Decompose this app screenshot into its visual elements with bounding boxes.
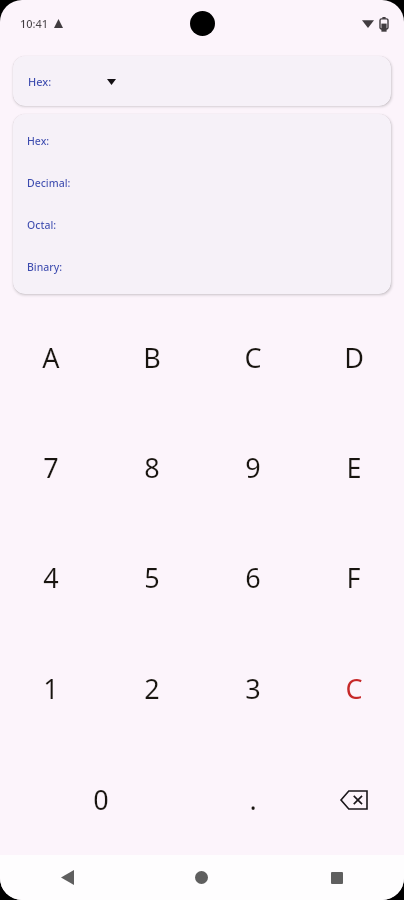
staticText: Hex: bbox=[27, 134, 50, 148]
button[interactable]: 4 bbox=[0, 522, 101, 633]
button[interactable]: Hex: bbox=[13, 56, 391, 106]
button[interactable]: 6 bbox=[202, 522, 303, 633]
button[interactable]: Back bbox=[0, 855, 134, 900]
staticText: Binary: bbox=[27, 260, 63, 274]
staticText: 1 bbox=[43, 670, 59, 707]
staticText: F bbox=[346, 559, 361, 596]
button[interactable]: . bbox=[202, 744, 303, 855]
button[interactable]: 8 bbox=[101, 412, 202, 522]
staticText: C bbox=[244, 339, 262, 376]
staticText: 10:41 bbox=[20, 16, 49, 31]
staticText: 0 bbox=[93, 781, 109, 818]
staticText: . bbox=[249, 781, 257, 818]
staticText: Hex: bbox=[28, 74, 52, 89]
staticText: A bbox=[42, 339, 60, 376]
button[interactable]: 9 bbox=[202, 412, 303, 522]
button[interactable]: Home bbox=[134, 855, 269, 900]
staticText: Octal: bbox=[27, 218, 57, 232]
button[interactable]: C bbox=[303, 633, 404, 744]
button[interactable]: B bbox=[101, 302, 202, 412]
staticText: Decimal: bbox=[27, 176, 71, 190]
button[interactable]: C bbox=[202, 302, 303, 412]
staticText: 9 bbox=[245, 449, 261, 486]
button[interactable]: Backspace bbox=[303, 744, 404, 855]
button[interactable]: 3 bbox=[202, 633, 303, 744]
staticText: 6 bbox=[245, 559, 261, 596]
staticText: 5 bbox=[144, 559, 160, 596]
button[interactable]: 2 bbox=[101, 633, 202, 744]
staticText: E bbox=[346, 449, 362, 486]
button[interactable]: 7 bbox=[0, 412, 101, 522]
button[interactable]: F bbox=[303, 522, 404, 633]
button[interactable]: D bbox=[303, 302, 404, 412]
staticText: 8 bbox=[144, 449, 160, 486]
button[interactable]: A bbox=[0, 302, 101, 412]
button[interactable]: 1 bbox=[0, 633, 101, 744]
button[interactable]: 5 bbox=[101, 522, 202, 633]
staticText: 2 bbox=[144, 670, 160, 707]
staticText: C bbox=[345, 670, 363, 707]
staticText: 4 bbox=[43, 559, 59, 596]
staticText: D bbox=[344, 339, 364, 376]
button[interactable]: 0 bbox=[0, 744, 202, 855]
button[interactable]: E bbox=[303, 412, 404, 522]
staticText: 7 bbox=[43, 449, 59, 486]
staticText: B bbox=[143, 339, 161, 376]
button[interactable]: Recent apps bbox=[269, 855, 404, 900]
staticText: 3 bbox=[245, 670, 261, 707]
